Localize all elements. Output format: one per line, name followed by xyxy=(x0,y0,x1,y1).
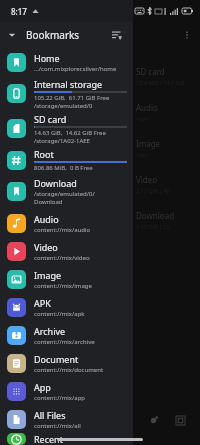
button[interactable]: Archive xyxy=(0,321,133,349)
button[interactable]: Select xyxy=(172,412,188,428)
staticText: All Files xyxy=(34,409,66,421)
staticText: 1.05 GiB | 29 xyxy=(136,223,170,230)
staticText: Video xyxy=(136,174,158,185)
staticText: Image xyxy=(34,269,62,281)
staticText: Download xyxy=(136,210,175,221)
staticText: Audio xyxy=(34,213,59,225)
button[interactable]: Audio xyxy=(0,209,133,237)
button[interactable]: More options xyxy=(180,28,194,42)
staticText: content://mix/app xyxy=(34,394,86,402)
staticText: /storage/emulated/0 xyxy=(34,102,93,110)
button[interactable]: All Files xyxy=(0,405,133,433)
staticText: Image xyxy=(136,138,161,149)
button[interactable]: SD card xyxy=(0,111,133,146)
button[interactable]: Video xyxy=(0,237,133,265)
button[interactable]: APK xyxy=(0,293,133,321)
staticText: 14.63 GiB, 14.62 GiB Free xyxy=(34,129,106,137)
button[interactable]: Image xyxy=(0,265,133,293)
button[interactable]: Document xyxy=(0,349,133,377)
staticText: content://mix/audio xyxy=(34,226,91,234)
staticText: Home xyxy=(34,52,60,64)
staticText: SD card xyxy=(136,66,165,77)
button[interactable]: Home xyxy=(0,48,133,76)
button[interactable]: Sort xyxy=(109,27,125,43)
staticText: APK xyxy=(34,297,51,309)
staticText: 12.4 MiB / 14.6 GiB xyxy=(136,79,185,86)
staticText: Document xyxy=(34,353,79,365)
button[interactable]: Bookmarks xyxy=(0,22,133,48)
staticText: /storage/1A02-1AEE xyxy=(34,137,90,145)
button[interactable]: Extensions xyxy=(145,412,161,428)
staticText: Download xyxy=(34,198,63,206)
staticText: Video xyxy=(34,241,58,253)
staticText: App xyxy=(34,381,51,393)
staticText: /storage/emulated/0/ xyxy=(34,190,95,198)
staticText: 8:17 xyxy=(11,6,27,17)
staticText: 105.22 GiB, 61.71 GiB Free xyxy=(34,94,110,102)
button[interactable]: Download xyxy=(0,174,133,209)
button[interactable]: Root xyxy=(0,146,133,174)
staticText: Bookmarks xyxy=(26,28,80,42)
button[interactable]: Recent xyxy=(0,433,133,445)
staticText: .../com.mixplorer.silver/home xyxy=(34,65,117,73)
staticText: 2.17 GiB | 46 xyxy=(136,187,170,194)
staticText: 806.86 MiB, 0 B Free xyxy=(34,164,93,172)
staticText: content://mix/image xyxy=(34,282,92,290)
staticText: Download xyxy=(34,177,77,189)
button[interactable]: App xyxy=(0,377,133,405)
staticText: Internal storage xyxy=(34,78,103,90)
staticText: SD card xyxy=(34,113,67,125)
staticText: Recent xyxy=(34,433,63,445)
staticText: content://mix/document xyxy=(34,366,104,374)
staticText: Archive xyxy=(34,325,66,337)
staticText: content://mix/apk xyxy=(34,310,85,318)
button[interactable]: Internal storage xyxy=(0,76,133,111)
staticText: content://mix/all xyxy=(34,422,81,430)
staticText: Root xyxy=(34,148,54,160)
staticText: content://mix/video xyxy=(34,254,90,262)
staticText: content://mix/archive xyxy=(34,338,95,346)
staticText: Audio xyxy=(136,102,158,113)
